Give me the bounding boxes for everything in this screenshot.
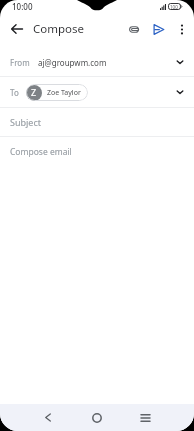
- button[interactable]: To: [0, 77, 194, 107]
- staticText: 100: [170, 4, 178, 10]
- button[interactable]: Back: [24, 404, 72, 431]
- staticText: aj@groupwm.com: [38, 57, 107, 68]
- button[interactable]: Compose email: [0, 137, 194, 167]
- staticText: Compose email: [10, 146, 72, 158]
- button[interactable]: Recent apps: [121, 404, 170, 431]
- button[interactable]: Back: [5, 17, 28, 40]
- staticText: To: [10, 87, 19, 98]
- button[interactable]: Subject: [0, 108, 194, 136]
- staticText: Subject: [10, 116, 42, 128]
- staticText: 10:00: [12, 1, 33, 12]
- button[interactable]: More options: [170, 17, 194, 41]
- button[interactable]: Attach file: [122, 17, 146, 41]
- staticText: From: [10, 57, 30, 68]
- button[interactable]: From: [0, 48, 194, 76]
- staticText: Zoe Taylor: [47, 88, 81, 98]
- button[interactable]: Home: [72, 404, 121, 431]
- staticText: Compose: [33, 21, 85, 37]
- staticText: Z: [31, 86, 37, 98]
- button[interactable]: Send: [146, 17, 170, 41]
